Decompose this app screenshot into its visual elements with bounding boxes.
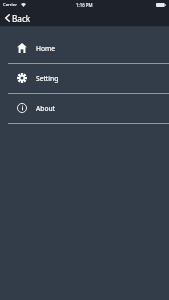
staticText: 1:16 PM: [76, 2, 93, 8]
staticText: Carrier: [3, 2, 17, 8]
other: About: [17, 103, 27, 113]
button[interactable]: Home: [0, 34, 169, 64]
staticText: Back: [12, 13, 31, 24]
other: Setting: [17, 73, 27, 83]
button[interactable]: About: [0, 94, 169, 124]
staticText: Setting: [36, 74, 59, 83]
other: Home: [17, 43, 27, 53]
button[interactable]: Setting: [0, 64, 169, 94]
staticText: Home: [36, 44, 56, 53]
staticText: About: [36, 104, 55, 113]
button[interactable]: Back: [0, 9, 37, 27]
